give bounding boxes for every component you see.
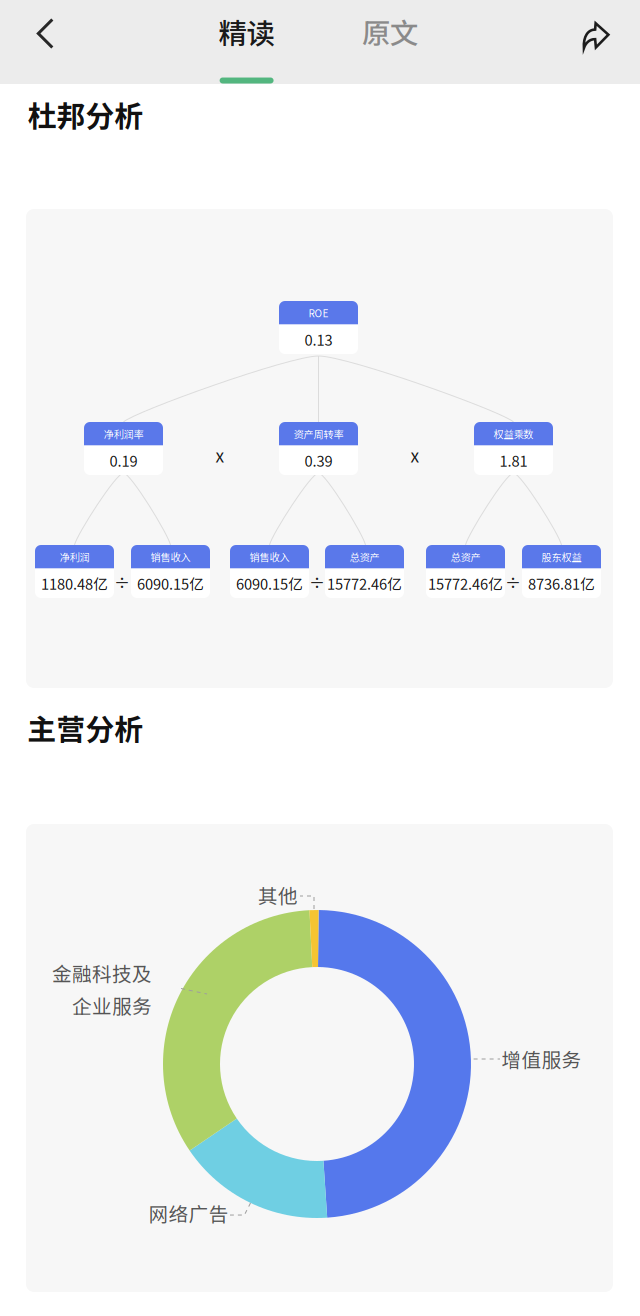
staticText: 股东权益 (541, 549, 581, 564)
button[interactable]: 精读 (204, 5, 288, 58)
staticText: 0.19 (109, 450, 137, 471)
staticText: 销售收入 (249, 549, 289, 564)
staticText: 净利润率 (103, 426, 143, 441)
staticText: 销售收入 (150, 549, 190, 564)
staticText: ÷ (505, 570, 521, 594)
staticText: 1.81 (499, 450, 527, 471)
staticText: 15772.46亿 (428, 573, 503, 594)
staticText: 净利润 (59, 549, 89, 564)
button[interactable]: Back (22, 3, 68, 63)
staticText: 杜邦分析 (27, 93, 143, 135)
staticText: ÷ (309, 570, 325, 594)
staticText: 原文 (362, 11, 418, 52)
staticText: 0.39 (304, 450, 332, 471)
staticText: 1180.48亿 (41, 573, 108, 594)
staticText: 8736.81亿 (528, 573, 595, 594)
staticText: 总资产 (349, 549, 379, 564)
staticText: 主营分析 (27, 707, 143, 748)
staticText: 增值服务 (501, 1044, 581, 1073)
staticText: 总资产 (450, 549, 480, 564)
staticText: 0.13 (304, 329, 332, 350)
staticText: 权益乘数 (493, 426, 533, 441)
staticText: 6090.15亿 (137, 573, 204, 594)
staticText: ÷ (114, 570, 130, 594)
staticText: 15772.46亿 (327, 573, 402, 594)
staticText: 网络广告 (149, 1199, 229, 1227)
staticText: ROE (308, 305, 328, 320)
staticText: 精读 (218, 11, 274, 52)
staticText: 企业服务 (72, 991, 152, 1019)
button[interactable]: Share (569, 9, 623, 63)
staticText: x (410, 442, 419, 468)
staticText: 资产周转率 (293, 426, 343, 441)
staticText: 6090.15亿 (236, 573, 303, 594)
staticText: 其他 (258, 881, 298, 909)
button[interactable]: 原文 (348, 5, 432, 58)
staticText: x (215, 442, 224, 468)
staticText: 金融科技及 (52, 959, 152, 987)
